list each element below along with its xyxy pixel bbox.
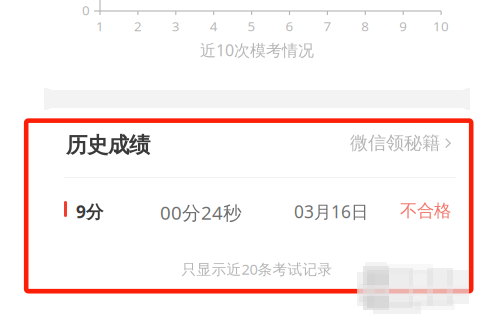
staticText: 0	[82, 1, 90, 19]
staticText: 6	[285, 17, 293, 35]
button[interactable]: 微信领秘籍	[0, 0, 125, 30]
staticText: 03月16日	[294, 200, 368, 223]
staticText: 5	[248, 17, 256, 35]
staticText: 7	[323, 17, 331, 35]
staticText: 9分	[76, 200, 103, 223]
staticText: 只显示近20条考试记录	[181, 259, 332, 279]
staticText: 历史成绩	[66, 132, 150, 158]
staticText: 微信领秘籍	[350, 132, 440, 154]
staticText: 10	[433, 17, 449, 35]
staticText: 近10次模考情况	[200, 39, 314, 61]
staticText: 9	[399, 17, 407, 35]
staticText: 00分24秒	[160, 200, 242, 225]
staticText: 8	[361, 17, 369, 35]
staticText: 2	[134, 17, 142, 35]
button[interactable]: 9分	[44, 186, 470, 232]
staticText: 1	[96, 17, 104, 35]
staticText: 不合格	[400, 200, 451, 221]
staticText: 4	[210, 17, 218, 35]
staticText: 3	[172, 17, 180, 35]
